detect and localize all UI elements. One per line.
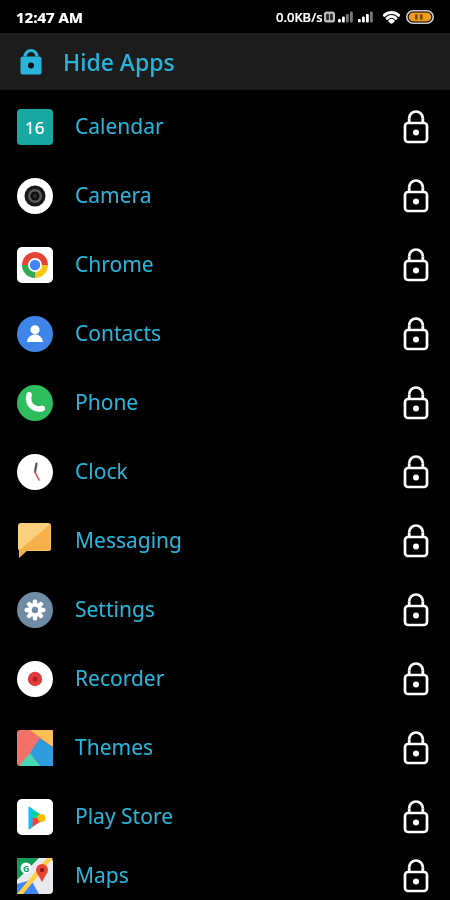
staticText: G: [23, 862, 30, 874]
staticText: Phone: [75, 388, 139, 417]
staticText: 16: [25, 116, 45, 139]
button[interactable]: Play Store: [0, 782, 450, 851]
button[interactable]: Contacts: [0, 299, 450, 368]
button[interactable]: Chrome: [0, 230, 450, 299]
staticText: Settings: [75, 595, 155, 624]
button[interactable]: Hide Apps: [0, 33, 450, 90]
staticText: Messaging: [75, 526, 183, 555]
button[interactable]: Themes: [0, 713, 450, 782]
button[interactable]: Recorder: [0, 644, 450, 713]
button[interactable]: Messaging: [0, 506, 450, 575]
button[interactable]: G: [0, 851, 450, 900]
button[interactable]: 16: [0, 92, 450, 161]
staticText: Contacts: [75, 319, 162, 348]
staticText: 0.0KB/s: [276, 8, 323, 26]
staticText: Hide Apps: [63, 46, 175, 77]
staticText: Camera: [75, 181, 152, 210]
button[interactable]: Settings: [0, 575, 450, 644]
button[interactable]: Phone: [0, 368, 450, 437]
staticText: Chrome: [75, 250, 154, 279]
staticText: Play Store: [75, 802, 173, 831]
staticText: Clock: [75, 457, 128, 486]
button[interactable]: Camera: [0, 161, 450, 230]
staticText: Recorder: [75, 664, 165, 693]
staticText: Themes: [75, 733, 154, 762]
staticText: Calendar: [75, 112, 164, 141]
staticText: 12:47 AM: [16, 7, 83, 27]
button[interactable]: Clock: [0, 437, 450, 506]
staticText: Maps: [75, 861, 129, 890]
